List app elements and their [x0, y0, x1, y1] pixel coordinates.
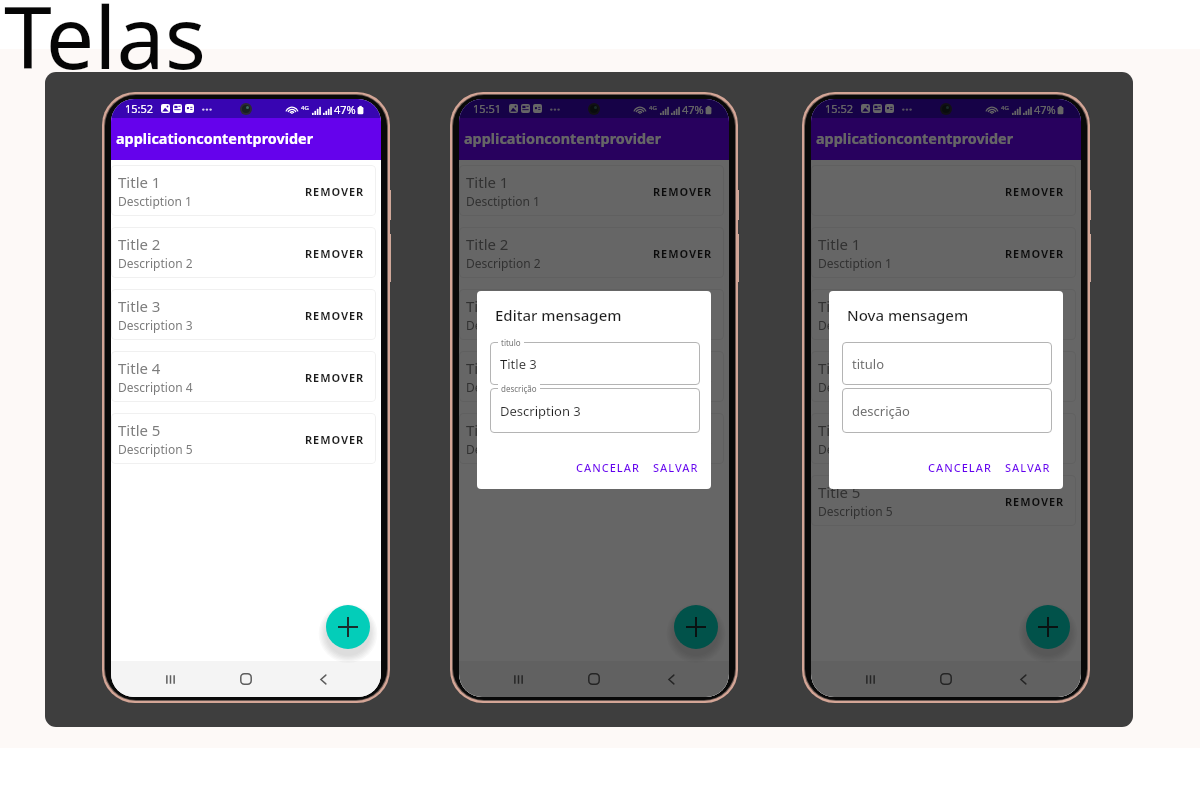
button[interactable]: Voltar	[1005, 661, 1041, 697]
staticText: Title 5	[466, 420, 509, 440]
button[interactable]: REMOVER	[299, 364, 371, 391]
button[interactable]: Title 2	[459, 227, 724, 278]
staticText: REMOVER	[653, 432, 713, 447]
staticText: REMOVER	[1005, 370, 1065, 385]
button[interactable]: Title 2	[111, 227, 376, 278]
button[interactable]: REMOVER	[999, 364, 1071, 391]
button[interactable]: Title 1	[811, 227, 1076, 278]
staticText: Description 2	[118, 255, 193, 271]
staticText: REMOVER	[1005, 432, 1065, 447]
button[interactable]: Voltar	[653, 661, 689, 697]
button[interactable]: Title 4	[111, 351, 376, 402]
staticText: Telas	[4, 0, 206, 94]
staticText: REMOVER	[305, 184, 365, 199]
staticText: Description 3	[466, 317, 541, 333]
button[interactable]: REMOVER	[299, 178, 371, 205]
staticText: REMOVER	[305, 308, 365, 323]
staticText: 4G	[301, 104, 309, 112]
button[interactable]: Recentes	[152, 661, 188, 697]
button[interactable]: Title 1	[111, 165, 376, 216]
button[interactable]: REMOVER	[647, 240, 719, 267]
staticText: REMOVER	[305, 370, 365, 385]
button[interactable]: Início	[928, 661, 964, 697]
staticText: titulo	[852, 355, 884, 373]
staticText: Description 4	[818, 441, 893, 457]
button[interactable]: Title 5	[459, 413, 724, 464]
staticText: Description 5	[118, 441, 193, 457]
button[interactable]: Description 3	[490, 388, 700, 433]
staticText: Description 4	[466, 379, 541, 395]
staticText: Title 4	[466, 358, 509, 378]
staticText: REMOVER	[653, 370, 713, 385]
staticText: 15:51	[473, 101, 502, 116]
button[interactable]: Title 3	[111, 289, 376, 340]
button[interactable]: Title 3	[459, 289, 724, 340]
staticText: REMOVER	[1005, 246, 1065, 261]
button[interactable]: Title 1	[459, 165, 724, 216]
button[interactable]: Início	[576, 661, 612, 697]
button[interactable]: REMOVER	[999, 240, 1071, 267]
button[interactable]: REMOVER	[647, 302, 719, 329]
staticText: REMOVER	[1005, 308, 1065, 323]
button[interactable]: Title 3	[490, 342, 700, 385]
button[interactable]: Title 2	[811, 289, 1076, 340]
staticText: Title 3	[466, 296, 509, 316]
button[interactable]: Recentes	[500, 661, 536, 697]
button[interactable]: REMOVER	[299, 240, 371, 267]
button[interactable]: REMOVER	[999, 426, 1071, 453]
button[interactable]: Início	[228, 661, 264, 697]
button[interactable]: REMOVER	[811, 165, 1076, 216]
staticText: CANCELAR	[576, 460, 640, 475]
staticText: Description 4	[118, 379, 193, 395]
staticText: 47%	[334, 102, 356, 117]
staticText: 15:52	[125, 101, 154, 116]
button[interactable]: Adicionar mensagem	[1026, 605, 1070, 649]
staticText: Title 2	[118, 234, 161, 254]
staticText: Title 3	[818, 358, 861, 378]
button[interactable]: Title 5	[111, 413, 376, 464]
button[interactable]: Recentes	[852, 661, 888, 697]
staticText: Description 3	[500, 402, 581, 420]
staticText: 4G	[1001, 104, 1009, 112]
button[interactable]: REMOVER	[647, 426, 719, 453]
button[interactable]: REMOVER	[299, 426, 371, 453]
button[interactable]: descrição	[842, 388, 1052, 433]
button[interactable]: REMOVER	[999, 488, 1071, 515]
staticText: Description 2	[818, 317, 893, 333]
staticText: REMOVER	[1005, 184, 1065, 199]
button[interactable]: REMOVER	[999, 178, 1071, 205]
button[interactable]: REMOVER	[647, 364, 719, 391]
staticText: Description 3	[818, 379, 893, 395]
button[interactable]: CANCELAR	[924, 456, 996, 479]
button[interactable]: CANCELAR	[572, 456, 644, 479]
button[interactable]: REMOVER	[647, 178, 719, 205]
staticText: REMOVER	[305, 246, 365, 261]
staticText: SALVAR	[1005, 460, 1051, 475]
staticText: REMOVER	[305, 432, 365, 447]
staticText: CANCELAR	[928, 460, 992, 475]
staticText: Title 1	[466, 172, 509, 192]
button[interactable]: Adicionar mensagem	[674, 605, 718, 649]
staticText: 4G	[649, 104, 657, 112]
staticText: applicationcontentprovider	[816, 129, 1014, 149]
staticText: Title 3	[500, 355, 537, 373]
button[interactable]: Title 4	[459, 351, 724, 402]
button[interactable]: Title 5	[811, 475, 1076, 526]
staticText: Desctiption 1	[818, 255, 892, 271]
button[interactable]: Adicionar mensagem	[326, 605, 370, 649]
staticText: Nova mensagem	[847, 305, 969, 325]
button[interactable]: Title 4	[811, 413, 1076, 464]
staticText: Description 5	[466, 441, 541, 457]
button[interactable]: Title 3	[811, 351, 1076, 402]
staticText: Description 3	[118, 317, 193, 333]
staticText: applicationcontentprovider	[464, 129, 662, 149]
button[interactable]: REMOVER	[999, 302, 1071, 329]
staticText: REMOVER	[1005, 494, 1065, 509]
button[interactable]: REMOVER	[299, 302, 371, 329]
button[interactable]: SALVAR	[649, 456, 703, 479]
staticText: Title 2	[466, 234, 509, 254]
button[interactable]: SALVAR	[1001, 456, 1055, 479]
staticText: Title 1	[118, 172, 161, 192]
button[interactable]: Voltar	[305, 661, 341, 697]
button[interactable]: titulo	[842, 342, 1052, 385]
